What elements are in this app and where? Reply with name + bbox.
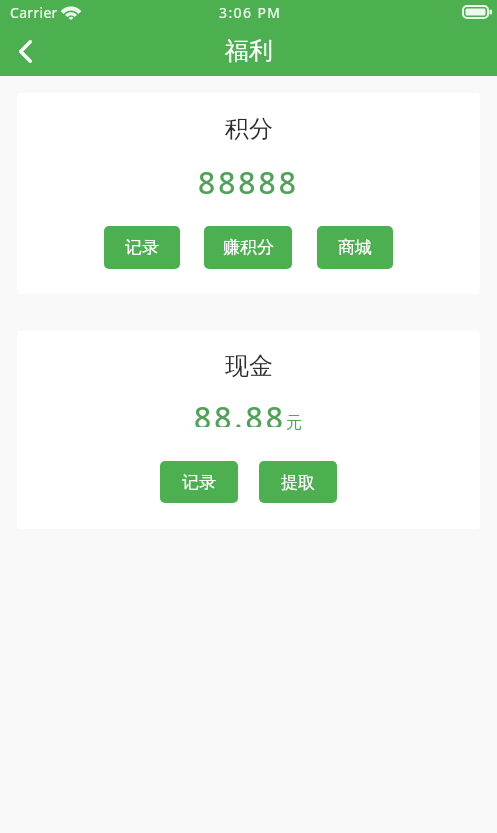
button[interactable]: 提取 [259,461,337,503]
button[interactable]: 记录 [104,226,180,269]
staticText: 福利 [225,36,273,66]
staticText: Carrier [10,3,58,22]
button[interactable]: 商城 [317,226,393,269]
button[interactable]: 赚积分 [204,226,292,269]
staticText: 3:06 PM [219,3,282,22]
staticText: 积分 [225,114,273,144]
staticText: 商城 [338,237,372,258]
staticText: 88888 [198,162,299,203]
button[interactable]: 记录 [160,461,238,503]
button[interactable]: Back [0,26,50,76]
staticText: 元 [286,413,302,433]
staticText: 赚积分 [223,237,274,258]
staticText: 记录 [182,472,216,493]
staticText: 提取 [281,472,315,493]
staticText: 88.88 [194,397,286,427]
staticText: 记录 [125,237,159,258]
staticText: 现金 [225,351,273,381]
